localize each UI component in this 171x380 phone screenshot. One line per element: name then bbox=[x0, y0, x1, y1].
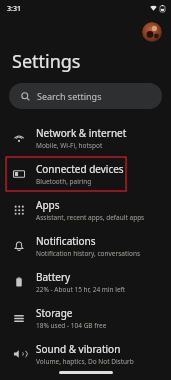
staticText: Search settings bbox=[37, 90, 102, 102]
staticText: Battery bbox=[36, 270, 71, 284]
staticText: Connected devices bbox=[36, 162, 124, 176]
button[interactable]: Search settings bbox=[9, 83, 162, 109]
button[interactable]: Notifications bbox=[0, 228, 171, 264]
staticText: Volume, haptics, Do Not Disturb bbox=[36, 357, 134, 366]
button[interactable]: Account avatar bbox=[142, 22, 162, 42]
staticText: 18% used - 104 GB free bbox=[36, 321, 107, 330]
button[interactable]: Network & internet bbox=[0, 120, 171, 156]
button[interactable]: Apps bbox=[0, 192, 171, 228]
staticText: Notifications bbox=[36, 234, 96, 248]
staticText: Bluetooth, pairing bbox=[36, 177, 92, 186]
button[interactable]: Battery bbox=[0, 264, 171, 300]
button[interactable]: Storage bbox=[0, 300, 171, 336]
staticText: Assistant, recent apps, default apps bbox=[36, 213, 145, 222]
staticText: Network & internet bbox=[36, 126, 127, 140]
button[interactable]: Connected devices bbox=[0, 156, 171, 192]
staticText: Apps bbox=[36, 198, 60, 212]
staticText: Mobile, Wi-Fi, hotspot bbox=[36, 141, 103, 150]
staticText: Notification history, conversations bbox=[36, 249, 141, 258]
staticText: Sound & vibration bbox=[36, 342, 121, 356]
staticText: Storage bbox=[36, 306, 73, 320]
staticText: Settings bbox=[12, 49, 81, 74]
staticText: 22% - About 15 hr, 24 min left bbox=[36, 285, 126, 294]
staticText: 3:31 bbox=[7, 4, 21, 14]
button[interactable]: Sound & vibration bbox=[0, 336, 171, 372]
